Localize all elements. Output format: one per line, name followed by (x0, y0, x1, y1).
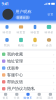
button[interactable]: 地址管理 (0, 58, 56, 65)
button[interactable]: 设置 (48, 13, 54, 16)
button[interactable]: 我的 (0, 36, 14, 49)
button[interactable]: 待付款 (0, 23, 14, 36)
staticText: 9:41 (1, 1, 8, 6)
button[interactable]: 帮助反馈 (0, 78, 56, 85)
staticText: 发现 (36, 96, 42, 100)
button[interactable]: 我的收藏 (0, 51, 56, 58)
staticText: › (53, 79, 54, 84)
button[interactable]: 待收货 (28, 23, 42, 36)
staticText: 优惠券 (7, 66, 19, 70)
staticText: 我的收藏 (7, 52, 23, 57)
staticText: 我的 (4, 44, 10, 47)
staticText: 我的 (47, 96, 53, 100)
button[interactable]: 购物车 (22, 92, 34, 100)
button[interactable]: 待评价 (42, 23, 56, 36)
staticText: 首页 (3, 96, 9, 100)
staticText: 购物车 (23, 96, 32, 100)
staticText: 待评价 (44, 31, 53, 34)
staticText: 客服中心 (7, 72, 23, 77)
staticText: › (53, 72, 54, 78)
button[interactable]: 积分 (28, 36, 42, 49)
staticText: 普通会员 (17, 16, 29, 19)
button[interactable]: 用户协议与隐私 (0, 85, 56, 92)
staticText: › (53, 52, 54, 57)
staticText: 积分 (32, 44, 38, 47)
staticText: › (53, 58, 54, 64)
button[interactable]: 会员 (42, 36, 56, 49)
button[interactable]: 分类 (11, 92, 22, 100)
button[interactable]: 发现 (34, 92, 45, 100)
staticText: 待收货 (30, 31, 39, 34)
staticText: 会员 (46, 44, 52, 47)
staticText: 待发货 (16, 31, 25, 34)
staticText: 地址管理 (7, 59, 23, 64)
button[interactable]: 首页 (0, 92, 11, 100)
staticText: 帮助反馈 (7, 79, 23, 84)
button[interactable]: 待发货 (14, 23, 28, 36)
button[interactable]: 优惠券 (0, 65, 56, 71)
staticText: 用户昵称 (16, 9, 32, 14)
staticText: 分类 (14, 96, 20, 100)
staticText: 设置 (48, 13, 54, 16)
button[interactable]: 钱包 (14, 36, 28, 49)
staticText: 用户协议与隐私 (7, 86, 35, 91)
staticText: › (53, 65, 54, 71)
staticText: 钱包 (18, 44, 24, 47)
staticText: › (53, 86, 54, 91)
button[interactable]: 我的 (45, 92, 56, 100)
button[interactable]: 客服中心 (0, 71, 56, 78)
staticText: 待付款 (2, 31, 11, 34)
